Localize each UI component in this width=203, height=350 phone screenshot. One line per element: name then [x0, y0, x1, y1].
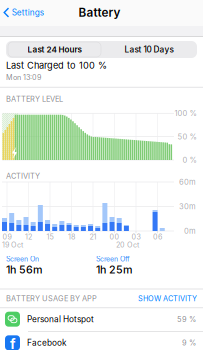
- staticText: Battery: [78, 5, 120, 20]
- staticText: 21: [89, 232, 96, 241]
- staticText: 12: [25, 232, 32, 241]
- button[interactable]: Last 24 Hours: [7, 41, 102, 58]
- staticText: ACTIVITY: [6, 171, 40, 180]
- staticText: 09: [2, 232, 11, 241]
- staticText: 9 %: [182, 338, 196, 347]
- staticText: BATTERY LEVEL: [6, 94, 63, 103]
- staticText: 50 %: [177, 132, 196, 141]
- staticText: 19 Oct: [2, 241, 23, 249]
- staticText: 30m: [179, 202, 196, 211]
- staticText: Settings: [12, 7, 44, 17]
- staticText: Last Charged to 100 %: [6, 60, 107, 71]
- button[interactable]: SHOW ACTIVITY: [127, 293, 197, 303]
- staticText: 00: [109, 232, 119, 241]
- staticText: BATTERY USAGE BY APP: [6, 294, 97, 303]
- staticText: Facebook: [27, 338, 67, 348]
- staticText: 20 Oct: [116, 241, 139, 249]
- staticText: 1h 25m: [96, 263, 132, 276]
- button[interactable]: Last 10 Days: [101, 41, 197, 58]
- staticText: Screen Off: [96, 255, 130, 263]
- staticText: 03: [131, 232, 140, 241]
- staticText: 59 %: [177, 315, 196, 324]
- staticText: Last 24 Hours: [27, 45, 81, 54]
- button[interactable]: Settings: [0, 2, 51, 22]
- staticText: 06: [153, 232, 162, 241]
- staticText: SHOW ACTIVITY: [138, 294, 197, 303]
- staticText: Last 10 Days: [124, 44, 173, 54]
- staticText: 18: [68, 232, 75, 241]
- staticText: 1h 56m: [6, 263, 42, 276]
- staticText: Personal Hotspot: [27, 314, 94, 324]
- staticText: f: [10, 335, 16, 350]
- staticText: 15: [46, 232, 53, 241]
- button[interactable]: Personal Hotspot: [0, 308, 203, 331]
- staticText: 100 %: [174, 109, 196, 118]
- button[interactable]: f: [0, 331, 203, 350]
- staticText: Mon 13:09: [6, 73, 41, 82]
- staticText: 0m: [184, 226, 196, 236]
- staticText: 60m: [179, 177, 196, 187]
- staticText: Screen On: [6, 255, 39, 263]
- staticText: 0 %: [182, 155, 196, 165]
